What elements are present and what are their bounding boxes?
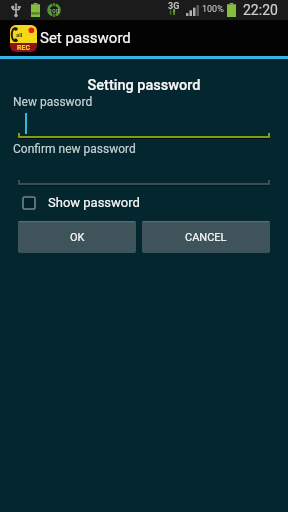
other: Call Recorder <box>10 25 37 52</box>
button[interactable]: Show password <box>22 193 152 211</box>
staticText: Set password <box>40 29 131 47</box>
staticText: 100 <box>49 7 60 14</box>
staticText: CANCEL <box>185 231 227 244</box>
staticText: Setting password <box>0 77 288 94</box>
staticText: 3G <box>168 1 180 12</box>
button[interactable]: CANCEL <box>142 221 270 253</box>
staticText: 100% <box>202 4 224 15</box>
staticText: REC <box>17 44 30 52</box>
staticText: OK <box>70 231 85 244</box>
button[interactable]: OK <box>18 221 136 253</box>
staticText: 22:20 <box>243 2 278 18</box>
staticText: all <box>16 31 23 38</box>
staticText: Confirm new password <box>13 142 136 156</box>
staticText: New password <box>13 95 93 109</box>
staticText: Show password <box>48 195 140 210</box>
